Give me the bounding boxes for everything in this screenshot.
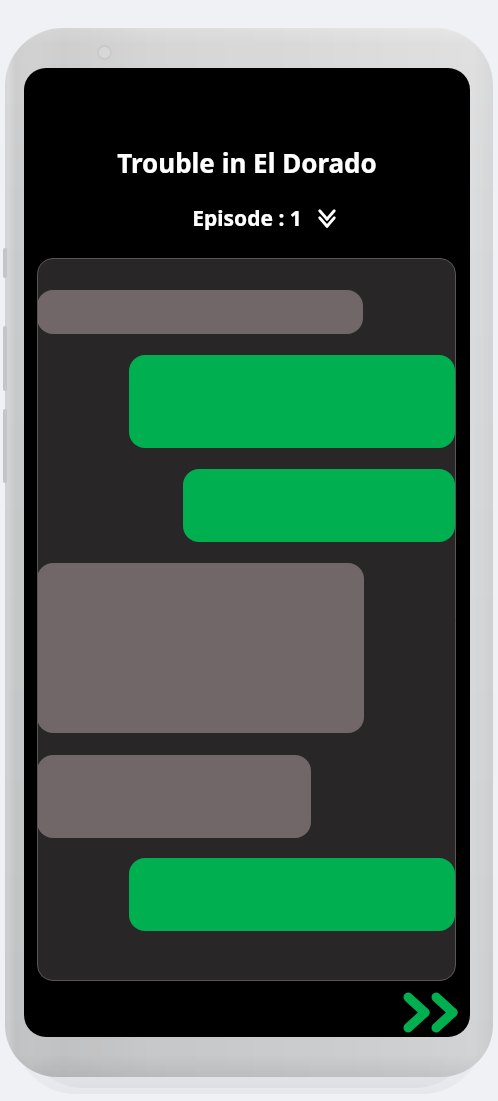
button[interactable] bbox=[37, 290, 363, 334]
button[interactable] bbox=[37, 755, 311, 838]
button[interactable]: Episode : 1 bbox=[24, 202, 470, 228]
button[interactable] bbox=[183, 469, 455, 542]
button[interactable] bbox=[129, 355, 455, 448]
button[interactable] bbox=[37, 563, 364, 733]
button[interactable] bbox=[129, 858, 455, 931]
button[interactable]: Next episode bbox=[397, 986, 463, 1037]
staticText: Trouble in El Dorado bbox=[24, 145, 470, 180]
staticText: Episode : 1 bbox=[24, 204, 470, 230]
